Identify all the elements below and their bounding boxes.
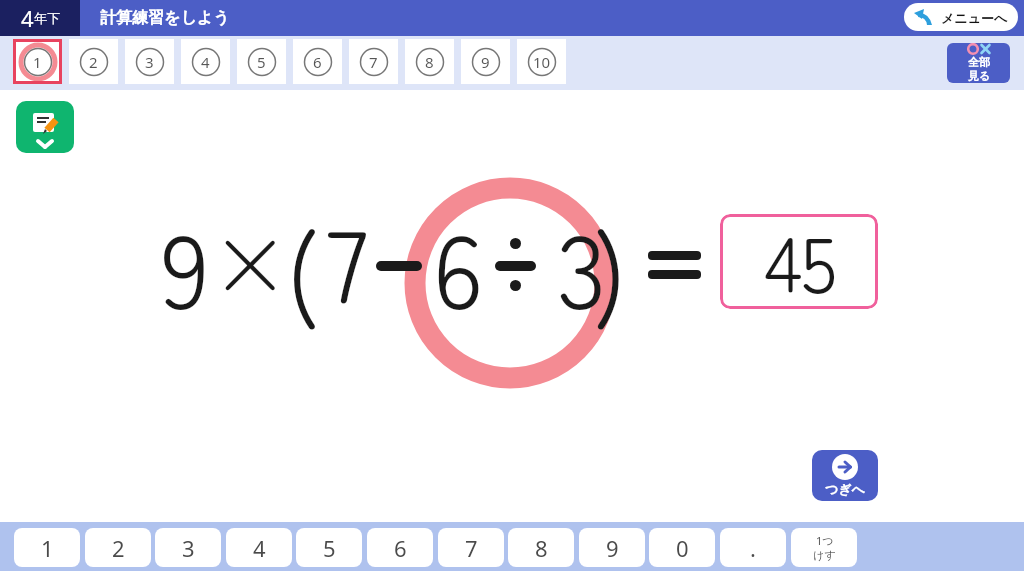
staticText: メニューへ (941, 10, 1008, 26)
button[interactable]: つぎへ (812, 450, 878, 501)
button[interactable]: 2 (69, 39, 118, 84)
button[interactable]: 6 (293, 39, 342, 84)
staticText: 1 (41, 533, 54, 563)
button[interactable]: 3 (125, 39, 174, 84)
staticText: 4 (201, 52, 210, 72)
staticText: 7 (369, 52, 378, 72)
button[interactable]: 5 (237, 39, 286, 84)
button[interactable]: 5 (296, 528, 362, 567)
staticText: 4 (253, 533, 266, 563)
button[interactable]: 7 (438, 528, 504, 567)
button[interactable]: 4 (181, 39, 230, 84)
staticText: 6 (313, 52, 322, 72)
staticText: 9 (161, 191, 210, 331)
staticText: 7 (465, 533, 478, 563)
staticText: × (211, 197, 290, 320)
staticText: 45 (764, 214, 835, 298)
staticText: 8 (425, 52, 434, 72)
button[interactable] (16, 101, 74, 153)
staticText: 見る (968, 69, 991, 83)
button[interactable]: 1 (14, 528, 80, 567)
button[interactable]: . (720, 528, 786, 567)
staticText: 10 (533, 52, 551, 72)
button[interactable]: 9 (579, 528, 645, 567)
staticText: 年下 (34, 10, 60, 26)
staticText: 全部 (968, 55, 990, 69)
button[interactable]: 7 (349, 39, 398, 84)
staticText: 6 (433, 191, 484, 331)
staticText: 2 (89, 52, 98, 72)
button[interactable]: 8 (508, 528, 574, 567)
staticText: 2 (112, 533, 125, 563)
staticText: 1つ (816, 533, 834, 548)
staticText: 9 (606, 533, 619, 563)
button[interactable]: 1つ (791, 528, 857, 567)
staticText: 3 (557, 191, 607, 331)
button[interactable]: 3 (155, 528, 221, 567)
button[interactable]: メニューへ (904, 3, 1018, 31)
button[interactable]: 8 (405, 39, 454, 84)
button[interactable]: 0 (649, 528, 715, 567)
button[interactable]: 4 (226, 528, 292, 567)
button[interactable]: 1 (13, 39, 62, 84)
staticText: つぎへ (825, 481, 865, 497)
button[interactable]: 2 (85, 528, 151, 567)
button[interactable]: 6 (367, 528, 433, 567)
staticText: . (750, 533, 756, 563)
staticText: 6 (394, 533, 407, 563)
staticText: 7 (326, 186, 369, 326)
button[interactable]: 9 (461, 39, 510, 84)
staticText: 0 (676, 533, 689, 563)
staticText: 計算練習をしよう (100, 8, 230, 28)
staticText: 5 (257, 52, 266, 72)
staticText: けす (813, 548, 836, 562)
button[interactable]: 10 (517, 39, 566, 84)
staticText: ( (285, 190, 320, 330)
staticText: 3 (145, 52, 154, 72)
staticText: 4 (21, 3, 34, 33)
staticText: 8 (535, 533, 548, 563)
staticText: 9 (481, 52, 490, 72)
staticText: ) (593, 190, 628, 330)
button[interactable]: 全部 (947, 43, 1010, 83)
staticText: 3 (182, 533, 195, 563)
staticText: 1 (33, 52, 42, 72)
staticText: 5 (323, 533, 336, 563)
